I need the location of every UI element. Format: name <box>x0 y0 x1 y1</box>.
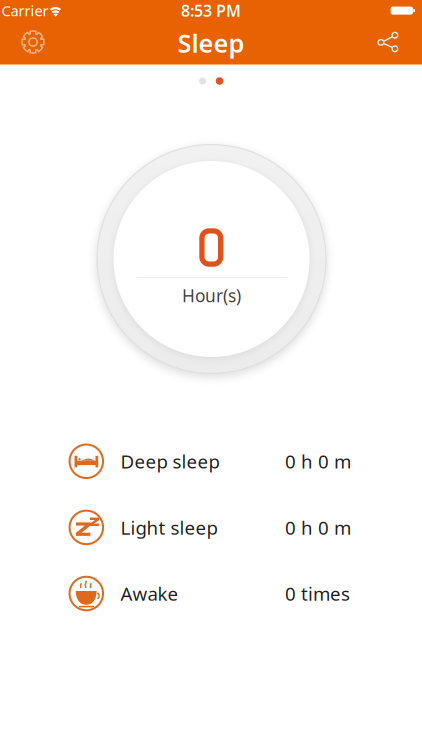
staticText: 0 h 0 m <box>285 449 351 474</box>
staticText: Hour(s) <box>182 284 241 307</box>
staticText: 8:53 PM <box>181 0 241 21</box>
staticText: Sleep <box>177 26 244 60</box>
staticText: Light sleep <box>121 515 218 540</box>
staticText: Awake <box>121 581 179 606</box>
button[interactable]: Share <box>366 21 410 65</box>
staticText: 0 h 0 m <box>285 515 351 540</box>
staticText: Carrier <box>1 1 48 20</box>
staticText: Deep sleep <box>121 449 220 474</box>
button[interactable]: Settings <box>11 20 55 64</box>
staticText: 0 times <box>285 581 350 606</box>
